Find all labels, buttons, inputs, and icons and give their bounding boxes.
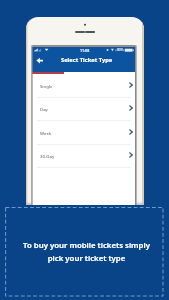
staticText: Select Ticket Type — [61, 56, 113, 64]
staticText: 80% — [117, 48, 124, 52]
button[interactable]: Day — [32, 98, 135, 121]
button[interactable]: Single — [32, 74, 135, 98]
button[interactable]: Back — [34, 56, 45, 67]
button[interactable]: Week — [32, 121, 135, 145]
staticText: 30-Day — [40, 153, 55, 159]
staticText: Week — [40, 130, 52, 136]
button[interactable]: 30-Day — [32, 145, 135, 168]
staticText: 11:08 — [80, 48, 90, 53]
staticText: Day — [40, 106, 48, 112]
staticText: To buy your mobile tickets simply pick y… — [23, 240, 150, 264]
staticText: Single — [40, 83, 53, 89]
